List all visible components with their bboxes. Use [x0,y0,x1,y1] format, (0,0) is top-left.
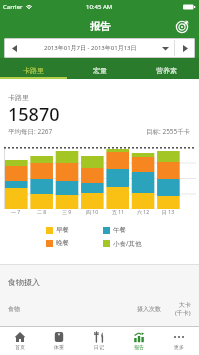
staticText: 四 10 [86,209,99,216]
staticText: 宏量 [93,66,107,75]
staticText: 营养素 [156,66,177,75]
staticText: 报告 [90,20,110,33]
staticText: 10:45 AM [86,3,113,11]
button[interactable]: 日记 [79,327,119,355]
staticText: 报告 [134,344,144,350]
button[interactable]: 首页 [0,327,39,355]
staticText: 平均每日: 2267 [8,127,53,136]
button[interactable]: 营养素 [133,58,199,79]
button[interactable] [175,38,195,58]
button[interactable]: 2013年01月7日 - 2013年01月13日 [24,38,156,58]
button[interactable] [4,38,24,58]
staticText: 二 8 [37,209,47,216]
staticText: 更多 [174,344,184,350]
button[interactable]: 宏量 [67,58,133,79]
button[interactable] [173,17,191,35]
staticText: 早餐 [56,226,69,234]
staticText: 2013年01月7日 - 2013年01月13日 [44,44,137,52]
staticText: Carrier [3,3,23,11]
button[interactable]: 体重 [39,327,79,355]
button[interactable]: 报告 [119,327,159,355]
staticText: 卡路里 [23,66,44,75]
staticText: 小食/其他 [113,239,142,248]
staticText: 三 9 [62,209,72,216]
staticText: 首页 [15,344,25,350]
staticText: 日记 [94,344,104,350]
staticText: 五 11 [112,209,125,216]
staticText: 午餐 [113,226,126,234]
staticText: 15870 [8,102,60,127]
staticText: 食物摄入 [8,277,40,287]
staticText: 目标: 2555千卡 [146,127,191,136]
staticText: 大卡 [179,301,191,309]
staticText: 卡路里 [8,93,29,102]
staticText: 晚餐 [56,239,69,247]
button[interactable]: 卡路里 [0,58,67,79]
staticText: 一 7 [11,209,21,216]
button[interactable] [156,38,174,58]
staticText: 摄入次数 [137,305,161,313]
button[interactable]: 更多 [159,327,199,355]
staticText: 体重 [54,344,64,350]
staticText: 食物 [8,305,20,313]
staticText: (千卡) [175,309,191,317]
staticText: 日 13 [162,209,175,216]
staticText: 六 12 [137,209,150,216]
